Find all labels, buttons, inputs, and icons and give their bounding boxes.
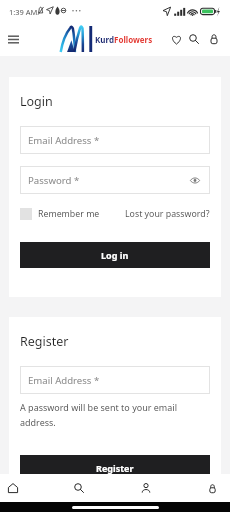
button[interactable]: Account xyxy=(135,474,157,502)
button[interactable]: Show password xyxy=(189,174,201,186)
button[interactable]: Search xyxy=(68,474,90,502)
button[interactable]: Lost your password? xyxy=(125,208,210,220)
staticText: Kurd xyxy=(95,34,114,45)
staticText: Register xyxy=(96,462,134,474)
staticText: Remember me xyxy=(38,208,100,220)
button[interactable]: Log in xyxy=(20,242,210,268)
button[interactable]: Cart xyxy=(205,30,223,48)
staticText: Login xyxy=(20,93,53,110)
staticText: Register xyxy=(20,333,69,350)
button[interactable]: Password * xyxy=(20,166,210,194)
staticText: Email Address * xyxy=(28,134,100,147)
button[interactable]: Cart xyxy=(201,474,223,502)
staticText: Password * xyxy=(28,174,80,187)
button[interactable]: Wishlist xyxy=(167,30,185,48)
staticText: Followers xyxy=(114,34,153,45)
staticText: Email Address * xyxy=(28,374,100,387)
button[interactable]: Remember me xyxy=(20,208,100,220)
button[interactable]: Menu xyxy=(4,28,22,50)
button[interactable]: Email Address * xyxy=(20,366,210,394)
button[interactable]: Search xyxy=(185,30,203,48)
staticText: 1:39 AM xyxy=(9,7,38,17)
button[interactable]: Register xyxy=(20,455,210,481)
staticText: Log in xyxy=(101,249,129,261)
button[interactable]: Email Address * xyxy=(20,126,210,154)
button[interactable]: Home xyxy=(2,474,24,502)
staticText: A password will be sent to your email ad… xyxy=(20,401,180,429)
